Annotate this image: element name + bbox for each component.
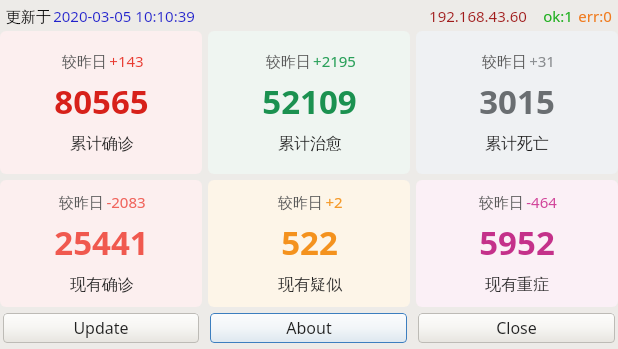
- staticText: 现有重症: [485, 275, 549, 295]
- staticText: Close: [496, 317, 537, 339]
- button[interactable]: Close: [418, 313, 615, 343]
- staticText: 2020-03-05 10:10:39: [53, 6, 195, 26]
- staticText: +31: [529, 51, 555, 71]
- button[interactable]: 较昨日: [416, 180, 618, 307]
- staticText: 3015: [479, 79, 555, 124]
- staticText: 较昨日: [60, 51, 109, 71]
- staticText: err:0: [578, 6, 612, 26]
- button[interactable]: 较昨日: [416, 31, 618, 174]
- button[interactable]: 较昨日: [0, 31, 202, 174]
- staticText: 5952: [479, 220, 555, 265]
- staticText: Update: [73, 317, 129, 339]
- staticText: 累计治愈: [278, 134, 342, 154]
- button[interactable]: 较昨日: [208, 180, 410, 307]
- staticText: 192.168.43.60: [429, 6, 527, 26]
- staticText: 较昨日: [264, 51, 313, 71]
- staticText: +143: [109, 51, 144, 71]
- staticText: 52109: [262, 79, 357, 124]
- staticText: 累计确诊: [70, 134, 134, 154]
- staticText: 较昨日: [477, 192, 526, 212]
- staticText: 较昨日: [276, 192, 325, 212]
- staticText: About: [286, 317, 332, 339]
- staticText: 较昨日: [57, 192, 106, 212]
- button[interactable]: 较昨日: [208, 31, 410, 174]
- staticText: 522: [281, 220, 338, 265]
- button[interactable]: About: [210, 313, 407, 343]
- button[interactable]: Update: [3, 313, 199, 343]
- staticText: 更新于: [4, 6, 53, 26]
- button[interactable]: 较昨日: [0, 180, 202, 307]
- staticText: +2195: [313, 51, 356, 71]
- staticText: 较昨日: [480, 51, 529, 71]
- staticText: 80565: [54, 79, 149, 124]
- staticText: +2: [325, 192, 343, 212]
- staticText: 现有疑似: [278, 275, 342, 295]
- staticText: 现有确诊: [70, 275, 134, 295]
- staticText: -2083: [106, 192, 146, 212]
- staticText: 25441: [54, 220, 149, 265]
- staticText: 累计死亡: [485, 134, 549, 154]
- staticText: -464: [526, 192, 557, 212]
- staticText: ok:1: [543, 6, 573, 26]
